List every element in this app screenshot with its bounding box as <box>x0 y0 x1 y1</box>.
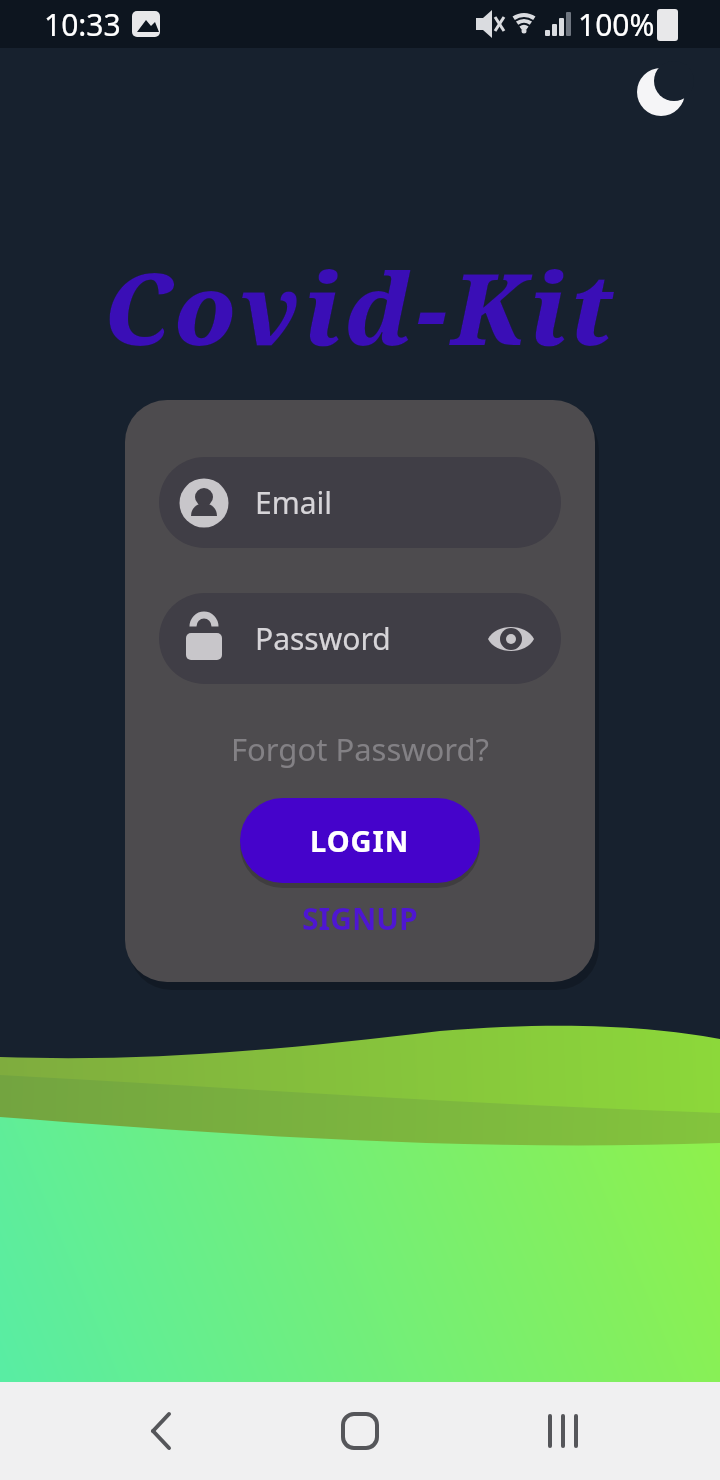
button[interactable]: LOGIN <box>240 798 480 883</box>
staticText: Covid-Kit <box>0 240 720 373</box>
button[interactable]: Forgot Password? <box>231 728 490 770</box>
button[interactable]: Email <box>159 457 561 548</box>
button[interactable] <box>320 1391 400 1471</box>
staticText: Password <box>255 618 391 659</box>
button[interactable]: SIGNUP <box>302 898 418 939</box>
button[interactable] <box>487 615 535 663</box>
staticText: Email <box>255 482 333 523</box>
button[interactable]: Password <box>159 593 561 684</box>
staticText: 10:33 <box>44 4 121 45</box>
staticText: 100% <box>578 4 655 45</box>
button[interactable] <box>122 1391 202 1471</box>
button[interactable] <box>523 1391 603 1471</box>
staticText: LOGIN <box>310 821 410 860</box>
